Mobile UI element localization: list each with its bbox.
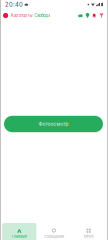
button[interactable]: Фильтр <box>99 13 104 18</box>
button[interactable]: Аэропорты <box>3 13 50 18</box>
staticText: Фотоосмотр <box>38 121 68 127</box>
button[interactable]: Уведомления <box>92 13 96 18</box>
staticText: 20:40 <box>5 1 23 8</box>
staticText: Сообщения <box>44 234 64 239</box>
button[interactable]: Сообщения <box>37 223 71 240</box>
button[interactable]: Фотоосмотр <box>4 116 103 132</box>
staticText: Главный <box>12 234 27 239</box>
staticText: Свобода <box>34 13 50 18</box>
button[interactable]: Погода <box>78 14 83 17</box>
button[interactable]: Главный <box>2 223 37 240</box>
button[interactable]: Локация <box>86 13 89 18</box>
staticText: Аэропорты <box>11 13 33 18</box>
button[interactable]: Меню <box>71 223 106 240</box>
staticText: Меню <box>84 234 94 239</box>
